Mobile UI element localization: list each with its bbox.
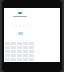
button[interactable] [18,32,23,35]
button[interactable]: App logo [18,12,22,14]
